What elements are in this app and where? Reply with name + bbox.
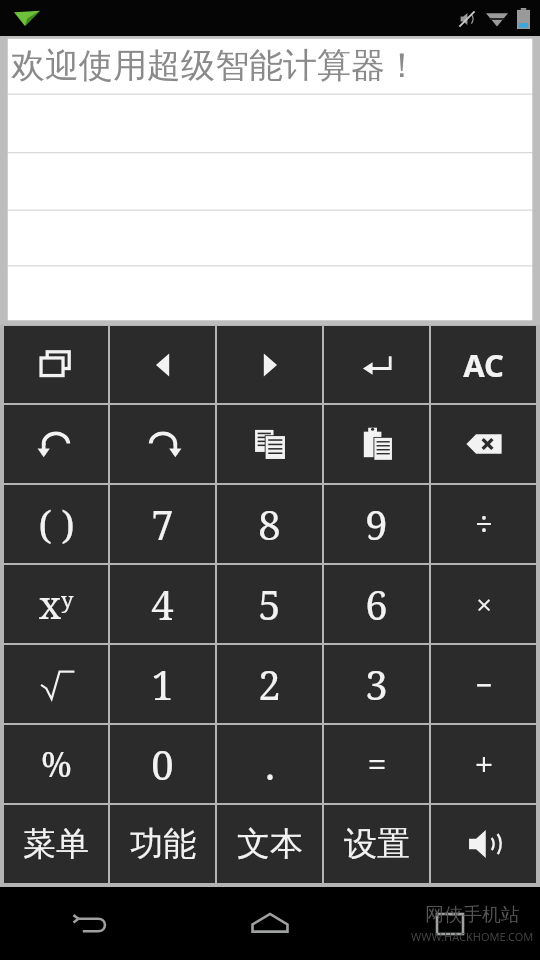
button[interactable]: Backspace xyxy=(431,405,536,483)
button[interactable]: Sound xyxy=(431,805,536,883)
button[interactable]: + xyxy=(431,725,536,803)
button[interactable]: Windows xyxy=(4,326,108,403)
staticText: 0 xyxy=(151,737,174,791)
button[interactable]: Move left xyxy=(110,326,215,403)
staticText: 1 xyxy=(151,657,174,711)
button[interactable]: ÷ xyxy=(431,485,536,563)
staticText: 网侠手机站 xyxy=(425,903,520,927)
staticText: 设置 xyxy=(344,823,410,865)
staticText: . xyxy=(265,737,275,791)
button[interactable]: Paste xyxy=(324,405,429,483)
button[interactable]: Redo xyxy=(110,405,215,483)
button[interactable]: ( ) xyxy=(4,485,108,563)
button[interactable]: = xyxy=(324,725,429,803)
button[interactable]: Back xyxy=(0,887,180,960)
button[interactable]: 8 xyxy=(217,485,322,563)
button[interactable]: 7 xyxy=(110,485,215,563)
button[interactable]: 3 xyxy=(324,645,429,723)
button[interactable]: 0 xyxy=(110,725,215,803)
button[interactable]: 9 xyxy=(324,485,429,563)
button[interactable]: 1 xyxy=(110,645,215,723)
staticText: ( ) xyxy=(38,498,75,550)
button[interactable]: 6 xyxy=(324,565,429,643)
staticText: 6 xyxy=(365,577,388,631)
staticText: 2 xyxy=(258,657,281,711)
button[interactable]: 菜单 xyxy=(4,805,108,883)
button[interactable]: 设置 xyxy=(324,805,429,883)
staticText: 文本 xyxy=(237,823,303,865)
button[interactable]: AC xyxy=(431,326,536,403)
staticText: AC xyxy=(463,344,504,386)
staticText: − xyxy=(475,664,493,705)
staticText: 5 xyxy=(258,577,281,631)
staticText: 8 xyxy=(258,497,281,551)
button[interactable]: Home xyxy=(180,887,360,960)
button[interactable]: × xyxy=(431,565,536,643)
staticText: × xyxy=(476,585,492,623)
staticText: % xyxy=(41,741,72,787)
button[interactable]: 文本 xyxy=(217,805,322,883)
button[interactable]: % xyxy=(4,725,108,803)
button[interactable]: 5 xyxy=(217,565,322,643)
staticText: 3 xyxy=(365,657,388,711)
button[interactable]: Recents xyxy=(360,887,540,960)
button[interactable]: Undo xyxy=(4,405,108,483)
button[interactable]: − xyxy=(431,645,536,723)
staticText: + xyxy=(474,741,494,787)
button[interactable]: 2 xyxy=(217,645,322,723)
staticText: xy xyxy=(39,578,74,630)
button[interactable]: 功能 xyxy=(110,805,215,883)
staticText: 功能 xyxy=(130,823,196,865)
button[interactable]: Copy xyxy=(217,405,322,483)
staticText: 9 xyxy=(365,497,388,551)
staticText: = xyxy=(367,741,387,787)
button[interactable]: Enter xyxy=(324,326,429,403)
button[interactable]: Nth root xyxy=(4,645,108,723)
staticText: 欢迎使用超级智能计算器！ xyxy=(11,44,419,87)
staticText: 菜单 xyxy=(23,823,89,865)
button[interactable]: . xyxy=(217,725,322,803)
staticText: 7 xyxy=(151,497,174,551)
button[interactable]: Move right xyxy=(217,326,322,403)
button[interactable]: xy xyxy=(4,565,108,643)
button[interactable]: 4 xyxy=(110,565,215,643)
staticText: 4 xyxy=(151,577,174,631)
staticText: WWW.HACKHOME.COM xyxy=(411,929,534,944)
staticText: ÷ xyxy=(475,502,493,546)
